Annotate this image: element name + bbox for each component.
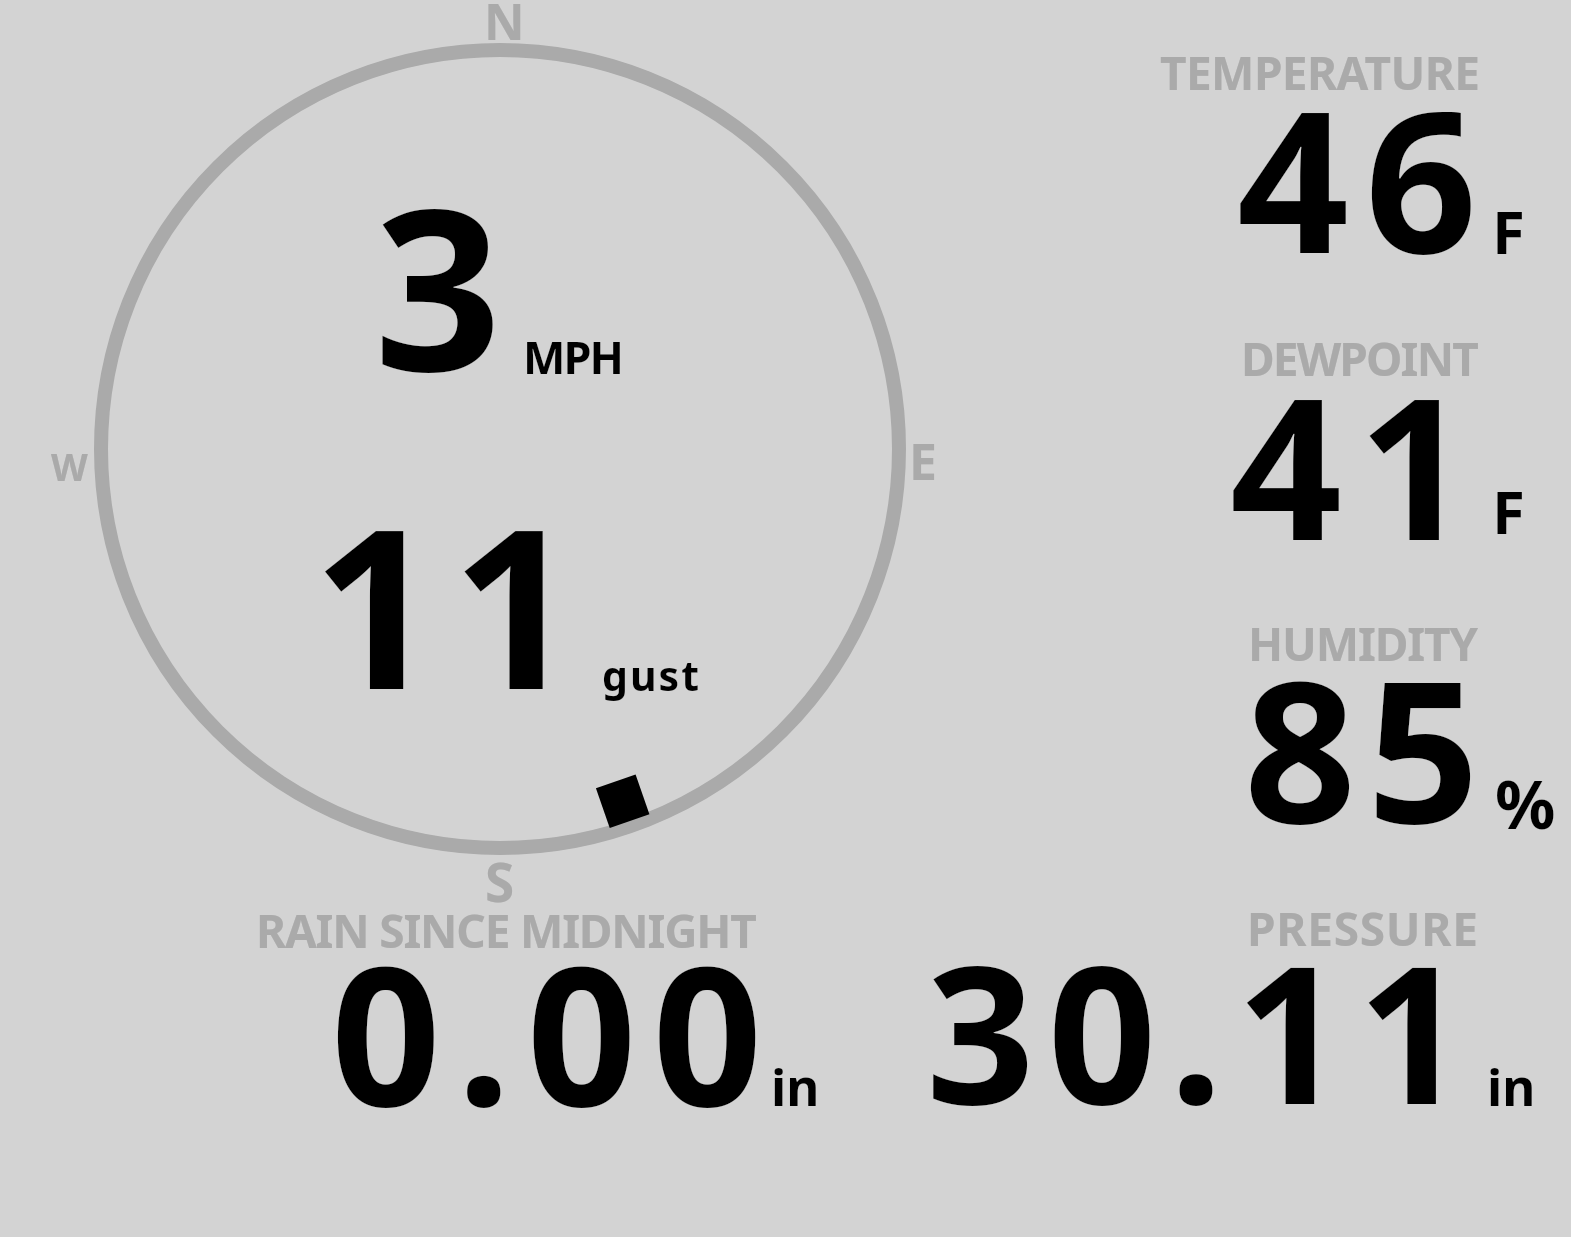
staticText: MPH <box>523 326 622 387</box>
button[interactable]: TEMPERATURE <box>1150 40 1571 275</box>
staticText: W <box>51 440 88 492</box>
staticText: 85 <box>1244 613 1491 848</box>
button[interactable]: RAIN SINCE MIDNIGHT <box>250 890 860 1125</box>
staticText: 41 <box>1230 330 1487 565</box>
staticText: F <box>1492 190 1525 272</box>
staticText: N <box>484 0 525 55</box>
staticText: in <box>1487 1051 1536 1120</box>
staticText: % <box>1495 757 1556 848</box>
staticText: F <box>1492 470 1525 552</box>
staticText: 46 <box>1237 43 1494 278</box>
staticText: RAIN SINCE MIDNIGHT <box>256 899 756 962</box>
button[interactable]: DEWPOINT <box>1150 320 1571 555</box>
staticText: DEWPOINT <box>1241 327 1477 390</box>
button[interactable]: PRESSURE <box>900 890 1540 1125</box>
staticText: S <box>485 845 515 917</box>
staticText: 30.11 <box>926 901 1480 1136</box>
staticText: in <box>771 1051 820 1120</box>
staticText: PRESSURE <box>1247 897 1479 960</box>
staticText: TEMPERATURE <box>1160 41 1480 104</box>
staticText: 3 <box>374 133 502 437</box>
staticText: E <box>909 427 937 495</box>
staticText: 0.00 <box>331 901 779 1136</box>
button[interactable]: HUMIDITY <box>1150 605 1571 840</box>
staticText: HUMIDITY <box>1248 612 1477 675</box>
button[interactable]: Wind compass, 3 miles per hour, gusting … <box>40 0 960 905</box>
staticText: 11 <box>312 453 591 754</box>
staticText: gust <box>602 647 701 703</box>
